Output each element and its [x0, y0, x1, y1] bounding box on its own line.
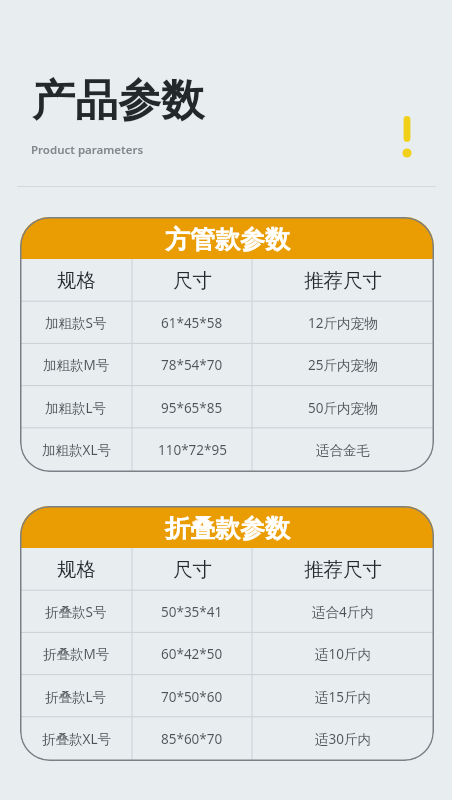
- staticText: 折叠款XL号: [42, 730, 111, 748]
- staticText: 95*65*85: [161, 399, 223, 417]
- button[interactable]: 方管款参数: [20, 217, 434, 472]
- staticText: 适合金毛: [316, 442, 370, 459]
- staticText: 加粗款L号: [45, 399, 107, 417]
- staticText: 50*35*41: [161, 603, 223, 621]
- staticText: 尺寸: [173, 268, 212, 293]
- button[interactable]: 折叠款参数: [20, 506, 434, 761]
- staticText: 适10斤内: [315, 645, 371, 663]
- staticText: 折叠款参数: [165, 513, 290, 544]
- staticText: 产品参数: [32, 74, 204, 128]
- staticText: 折叠款S号: [45, 603, 107, 621]
- staticText: Product parameters: [31, 142, 144, 158]
- staticText: 适15斤内: [315, 688, 371, 706]
- staticText: 加粗款S号: [45, 314, 107, 332]
- staticText: 加粗款M号: [43, 356, 110, 374]
- staticText: 61*45*58: [161, 314, 223, 332]
- staticText: 尺寸: [173, 557, 212, 582]
- staticText: 50斤内宠物: [308, 399, 378, 417]
- staticText: 加粗款XL号: [42, 441, 111, 459]
- staticText: 25斤内宠物: [308, 356, 378, 374]
- staticText: 85*60*70: [161, 730, 223, 748]
- staticText: 78*54*70: [161, 356, 223, 374]
- staticText: 推荐尺寸: [304, 268, 382, 293]
- staticText: 规格: [57, 557, 96, 582]
- staticText: 规格: [57, 268, 96, 293]
- staticText: 110*72*95: [158, 441, 227, 459]
- staticText: 折叠款M号: [43, 645, 110, 663]
- staticText: 适合4斤内: [312, 603, 374, 621]
- staticText: 60*42*50: [161, 645, 223, 663]
- staticText: 12斤内宠物: [308, 314, 378, 332]
- button[interactable]: Notice: [399, 116, 415, 160]
- staticText: 适30斤内: [315, 730, 371, 748]
- staticText: 折叠款L号: [45, 688, 107, 706]
- staticText: 方管款参数: [165, 224, 290, 255]
- staticText: 70*50*60: [161, 688, 223, 706]
- staticText: 推荐尺寸: [304, 557, 382, 582]
